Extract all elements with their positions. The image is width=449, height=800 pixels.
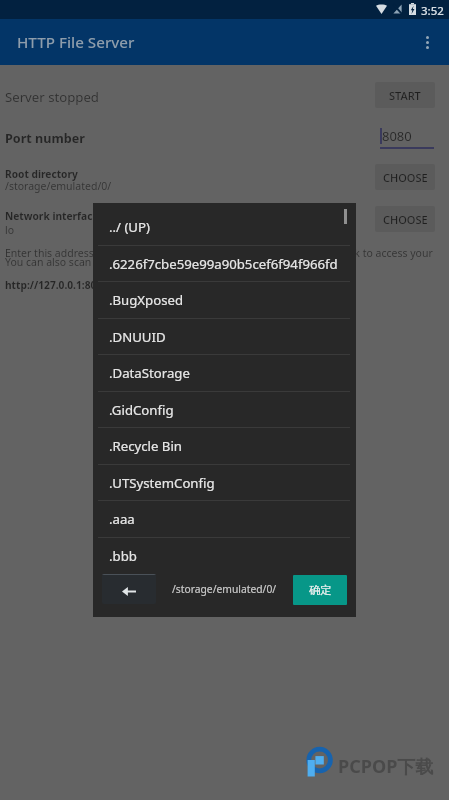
button[interactable]: ../ (UP)	[93, 208, 356, 245]
staticText: /storage/emulated/0/	[172, 582, 277, 596]
staticText: Network interface	[5, 209, 99, 223]
staticText: Enter this address in the browser of ano…	[5, 246, 449, 260]
staticText: Root directory	[5, 167, 78, 181]
staticText: Port number	[5, 130, 85, 147]
staticText: HTTP File Server	[17, 32, 135, 53]
staticText: 确定	[309, 583, 332, 597]
staticText: lo	[5, 223, 15, 237]
button[interactable]: .UTSystemConfig	[93, 464, 356, 501]
staticText: You can also scan the QR code below.	[5, 255, 189, 269]
staticText: 8080	[382, 127, 412, 145]
staticText: 3:52	[421, 3, 444, 19]
staticText: .6226f7cbe59e99a90b5cef6f94f966fd	[109, 255, 338, 273]
staticText: .bbb	[109, 547, 137, 565]
staticText: Server stopped	[5, 88, 99, 106]
button[interactable]: .Recycle Bin	[93, 427, 356, 464]
button[interactable]: .DNUUID	[93, 318, 356, 355]
staticText: /storage/emulated/0/	[5, 179, 112, 193]
button[interactable]: .DataStorage	[93, 354, 356, 391]
staticText: http://127.0.0.1:8080	[5, 278, 108, 292]
staticText: .UTSystemConfig	[109, 474, 215, 492]
button[interactable]: CHOOSE	[375, 164, 435, 190]
staticText: CHOOSE	[383, 212, 428, 227]
staticText: .BugXposed	[109, 291, 184, 309]
button[interactable]: .aaa	[93, 500, 356, 537]
button[interactable]: More options	[405, 19, 449, 65]
staticText: .DNUUID	[109, 328, 166, 346]
button[interactable]: .BugXposed	[93, 281, 356, 318]
button[interactable]: .bbb	[93, 537, 356, 574]
staticText: .aaa	[109, 510, 135, 528]
button[interactable]: START	[375, 82, 435, 108]
staticText: PCPOP下载	[338, 754, 434, 779]
button[interactable]: 确定	[293, 575, 347, 605]
staticText: CHOOSE	[383, 170, 428, 185]
staticText: .DataStorage	[109, 364, 190, 382]
button[interactable]: CHOOSE	[375, 206, 435, 232]
staticText: START	[389, 88, 421, 103]
button[interactable]: .GidConfig	[93, 391, 356, 428]
staticText: ../ (UP)	[109, 218, 150, 236]
button[interactable]: Up one level	[102, 574, 156, 604]
button[interactable]: .6226f7cbe59e99a90b5cef6f94f966fd	[93, 245, 356, 282]
staticText: .Recycle Bin	[109, 437, 182, 455]
staticText: .GidConfig	[109, 401, 174, 419]
